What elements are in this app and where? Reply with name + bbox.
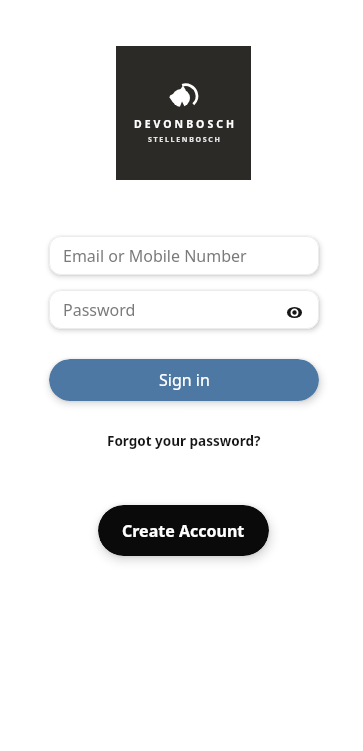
staticText: DEVONBOSCH <box>134 117 237 131</box>
button[interactable]: Email or Mobile Number <box>49 236 319 275</box>
staticText: Password <box>63 299 136 321</box>
staticText: Email or Mobile Number <box>63 245 247 267</box>
button[interactable]: Forgot your password? <box>107 432 261 450</box>
button[interactable]: Create Account <box>98 505 269 556</box>
staticText: STELLENBOSCH <box>148 135 222 145</box>
button[interactable]: Password <box>49 290 319 329</box>
button[interactable]: Sign in <box>49 359 319 401</box>
staticText: Sign in <box>159 369 210 391</box>
staticText: Create Account <box>122 520 245 542</box>
